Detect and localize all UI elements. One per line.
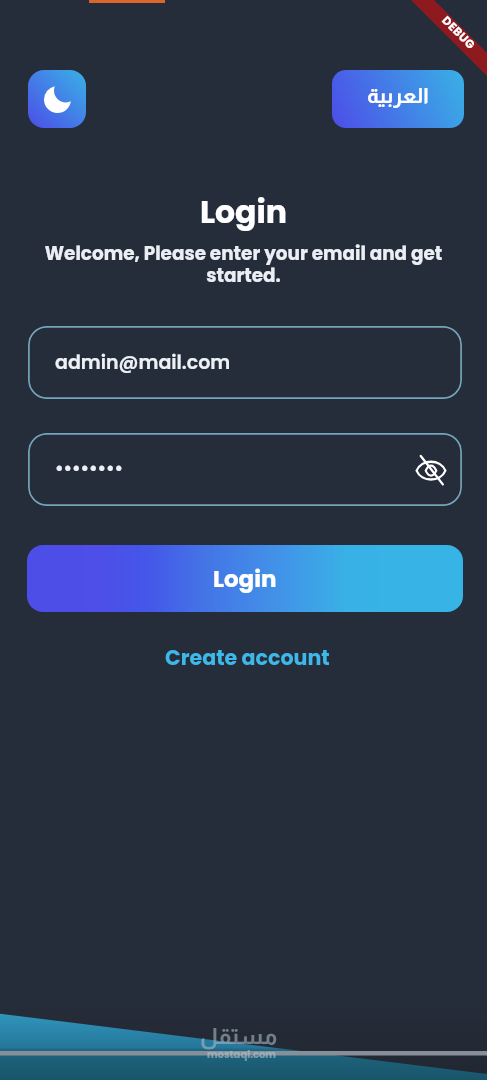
button[interactable]: Toggle theme <box>28 70 86 128</box>
staticText: Welcome, Please enter your email and get… <box>42 241 445 288</box>
staticText: Login <box>0 190 487 234</box>
staticText: •••••••• <box>55 456 124 480</box>
staticText: Login <box>213 563 277 595</box>
staticText: Create account <box>165 643 330 672</box>
button[interactable]: العربية <box>332 70 464 128</box>
staticText: مستقل <box>200 1024 278 1049</box>
button[interactable]: admin@mail.com <box>28 326 462 399</box>
button[interactable]: Login <box>27 545 463 612</box>
staticText: admin@mail.com <box>55 349 231 376</box>
staticText: العربية <box>367 84 429 107</box>
staticText: mostaql.com <box>207 1047 276 1061</box>
button[interactable]: •••••••• <box>28 433 462 506</box>
staticText: DEBUG <box>438 12 479 53</box>
button[interactable]: Show password <box>405 444 457 496</box>
button[interactable]: Create account <box>151 637 344 678</box>
